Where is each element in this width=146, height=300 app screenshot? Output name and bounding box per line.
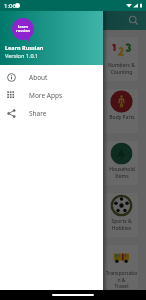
staticText: About xyxy=(29,73,48,82)
staticText: Share xyxy=(29,109,47,118)
staticText: Household Items xyxy=(109,166,135,179)
button[interactable]: Numbers & Counting xyxy=(105,37,138,81)
staticText: Version 1.0.1 xyxy=(5,52,39,59)
button[interactable]: Numbers & Counting xyxy=(8,37,40,81)
button[interactable]: Household Items xyxy=(105,141,138,185)
button[interactable]: Home xyxy=(52,294,94,296)
staticText: Numbers & Counting xyxy=(11,62,38,75)
button[interactable]: Body Parts xyxy=(56,89,89,133)
staticText: Body Parts xyxy=(11,114,37,121)
staticText: Transportation & Travel xyxy=(105,270,138,289)
staticText: Numbers & Counting xyxy=(108,62,135,75)
staticText: Numbers & Counting xyxy=(59,62,86,75)
button[interactable]: Transportation & Travel xyxy=(105,245,138,289)
staticText: Body Parts xyxy=(109,114,135,121)
button[interactable]: Numbers & Counting xyxy=(56,37,89,81)
staticText: learn russian xyxy=(16,24,30,34)
button[interactable]: More Apps xyxy=(0,86,103,104)
staticText: Learn Russian xyxy=(5,44,44,51)
button[interactable]: Body Parts xyxy=(105,89,138,133)
staticText: Sports & Hobbies xyxy=(111,218,132,231)
staticText: 1:06 xyxy=(4,2,16,10)
button[interactable]: Share xyxy=(0,104,103,122)
button[interactable]: About xyxy=(0,68,103,86)
staticText: More Apps xyxy=(29,91,63,100)
button[interactable]: Search xyxy=(126,13,141,28)
button[interactable]: Body Parts xyxy=(8,89,40,133)
button[interactable]: Sports & Hobbies xyxy=(105,193,138,237)
